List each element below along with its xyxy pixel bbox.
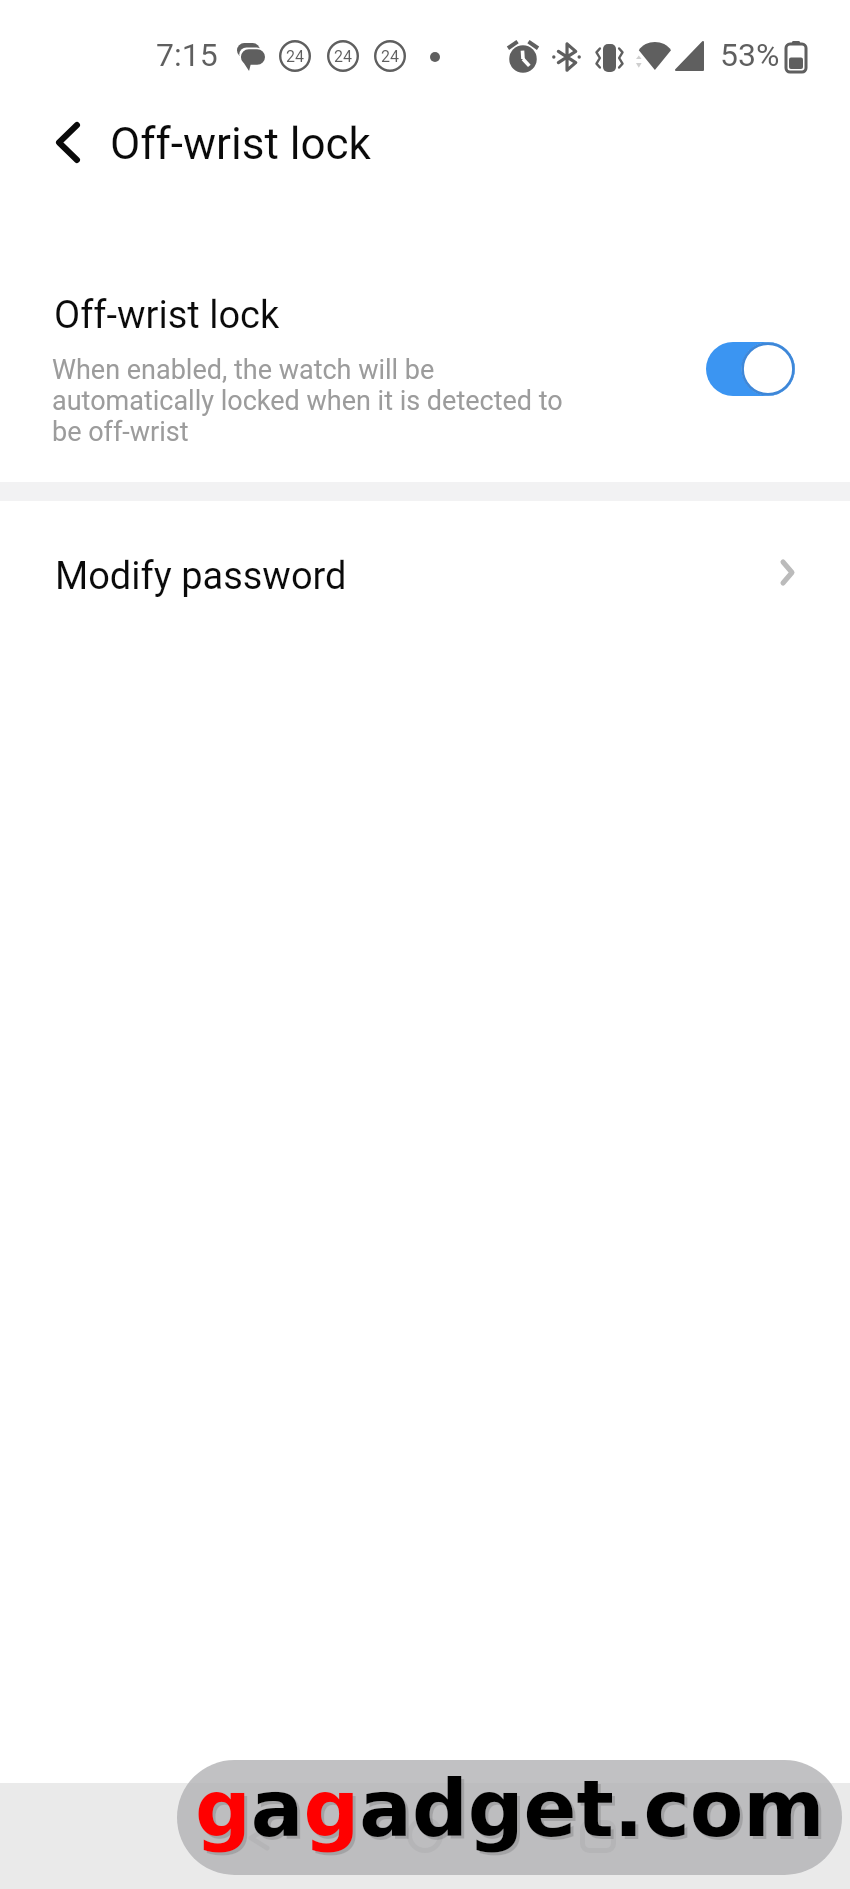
staticText: When enabled, the watch will be automati… [52, 354, 563, 447]
staticText: Off-wrist lock [54, 293, 280, 338]
staticText: 53% [720, 36, 780, 74]
button[interactable]: Recents [568, 1806, 628, 1866]
staticText: 24 [381, 47, 399, 66]
staticText: 24 [334, 47, 352, 66]
staticText: gagadget.com [198, 1760, 828, 1859]
button[interactable]: Off-wrist lock toggle [706, 342, 795, 396]
staticText: 7:15 [156, 36, 218, 74]
staticText: Off-wrist lock [110, 118, 371, 170]
staticText: gagadget.com [195, 1760, 825, 1856]
staticText: 24 [286, 47, 304, 66]
button[interactable]: Back [229, 1808, 289, 1868]
button[interactable]: Off-wrist lock [0, 260, 850, 470]
button[interactable]: Modify password [0, 501, 850, 647]
button[interactable]: Home [395, 1805, 455, 1865]
button[interactable]: Back [37, 101, 99, 183]
staticText: Modify password [55, 554, 347, 599]
